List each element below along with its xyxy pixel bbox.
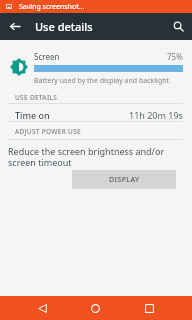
button[interactable]: Navigate up [0, 13, 30, 40]
staticText: Time on [15, 109, 50, 121]
staticText: 11h 20m 19s [129, 109, 183, 121]
button[interactable]: Home [75, 296, 115, 320]
button[interactable]: DISPLAY [72, 170, 176, 189]
button[interactable]: Back [22, 296, 62, 320]
staticText: USE DETAILS [15, 93, 58, 102]
staticText: 75% [167, 51, 183, 62]
staticText: ADJUST POWER USE [15, 127, 81, 136]
staticText: Use details [35, 19, 93, 34]
staticText: Battery used by the display and backligh… [34, 76, 170, 86]
staticText: Reduce the screen brightness and/or scre… [8, 145, 165, 168]
button[interactable]: Search [165, 13, 192, 40]
staticText: Screen [34, 51, 60, 62]
staticText: Saving screenshot... [19, 2, 85, 12]
button[interactable]: Recent apps [129, 296, 169, 320]
staticText: DISPLAY [109, 175, 140, 185]
